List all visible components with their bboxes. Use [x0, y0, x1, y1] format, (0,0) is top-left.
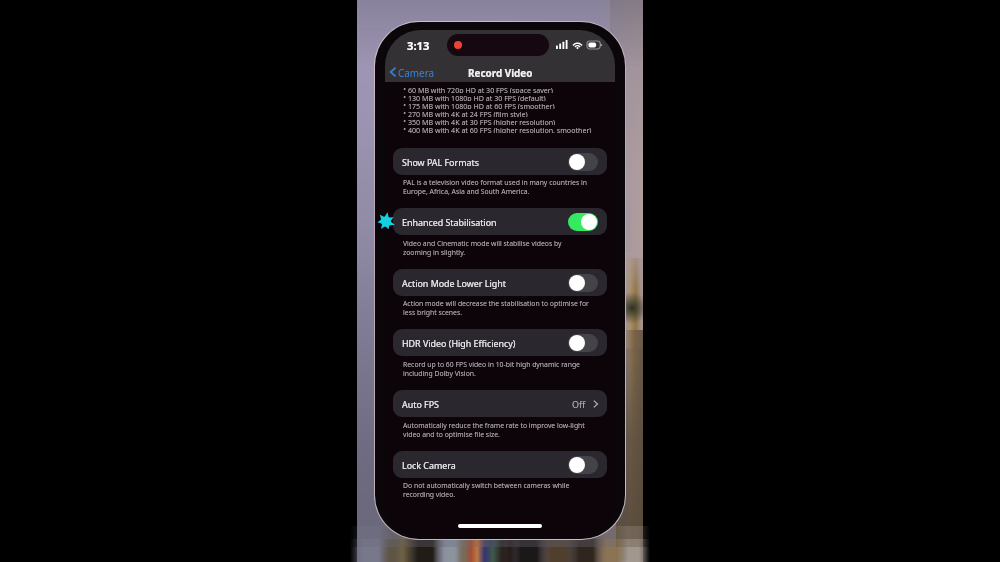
staticText: Automatically reduce the frame rate to i…: [403, 421, 585, 439]
staticText: Record up to 60 FPS video in 10-bit high…: [403, 360, 580, 378]
staticText: 350 MB with 4K at 30 FPS (higher resolut…: [408, 117, 556, 125]
staticText: Action mode will decrease the stabilisat…: [403, 299, 589, 317]
staticText: 3:13: [407, 38, 430, 53]
staticText: Show PAL Formats: [402, 156, 479, 168]
staticText: 400 MB with 4K at 60 FPS (higher resolut…: [408, 125, 592, 133]
staticText: PAL is a television video format used in…: [403, 178, 588, 196]
staticText: Off: [572, 398, 586, 410]
button[interactable]: HDR Video (High Efficiency): [393, 329, 607, 356]
button[interactable]: Auto FPS: [393, 390, 607, 417]
button[interactable]: Toggle off: [568, 153, 598, 171]
button[interactable]: Toggle on: [568, 213, 598, 231]
button[interactable]: Lock Camera: [393, 451, 607, 478]
staticText: Action Mode Lower Light: [402, 277, 506, 289]
staticText: 130 MB with 1080p HD at 30 FPS (default): [408, 93, 546, 101]
button[interactable]: Action Mode Lower Light: [393, 269, 607, 296]
button[interactable]: Camera: [388, 63, 437, 80]
staticText: 175 MB with 1080p HD at 60 FPS (smoother…: [408, 101, 555, 109]
button[interactable]: Show PAL Formats: [393, 148, 607, 175]
staticText: Video and Cinematic mode will stabilise …: [403, 239, 562, 257]
staticText: Auto FPS: [402, 398, 439, 410]
staticText: 60 MB with 720p HD at 30 FPS (space save…: [408, 85, 553, 93]
staticText: Camera: [398, 66, 435, 79]
button[interactable]: Toggle off: [568, 456, 598, 474]
button[interactable]: Enhanced Stabilisation: [393, 208, 607, 235]
staticText: 270 MB with 4K at 24 FPS (film style): [408, 109, 528, 117]
staticText: Lock Camera: [402, 459, 456, 471]
staticText: Do not automatically switch between came…: [403, 481, 570, 499]
staticText: Enhanced Stabilisation: [402, 216, 497, 228]
button[interactable]: Toggle off: [568, 334, 598, 352]
other: Cursor highlight: [376, 212, 396, 231]
button[interactable]: Toggle off: [568, 274, 598, 292]
staticText: Record Video: [468, 66, 533, 79]
staticText: HDR Video (High Efficiency): [402, 337, 516, 349]
